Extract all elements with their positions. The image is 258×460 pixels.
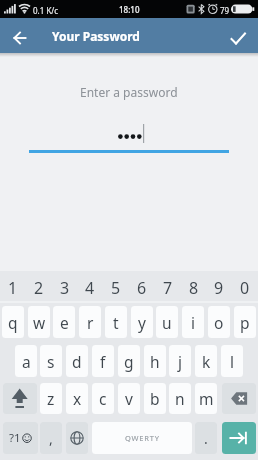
button[interactable]: d [66, 345, 88, 377]
button[interactable]: 9 [206, 274, 232, 302]
button[interactable]: . [195, 422, 217, 454]
staticText: 0 [240, 277, 250, 299]
staticText: 1 [8, 277, 18, 299]
button[interactable]: ?1 [3, 422, 38, 454]
staticText: l [230, 351, 234, 372]
button[interactable]: v [118, 383, 140, 414]
button[interactable]: t [105, 306, 127, 338]
staticText: 7 [163, 277, 173, 299]
button[interactable]: 6 [129, 274, 155, 302]
button[interactable]: QWERTY [92, 422, 192, 454]
button[interactable]: 5 [103, 274, 129, 302]
staticText: e [60, 312, 69, 333]
button[interactable] [222, 383, 256, 414]
staticText: z [47, 388, 55, 409]
button[interactable]: z [40, 383, 62, 414]
button[interactable] [66, 422, 88, 454]
button[interactable]: a [15, 345, 37, 377]
staticText: b [150, 388, 160, 409]
staticText: v [125, 388, 133, 409]
staticText: x [73, 388, 82, 409]
staticText: s [47, 351, 55, 372]
staticText: g [124, 351, 134, 372]
button[interactable]: e [53, 306, 75, 338]
staticText: 0.1 K/c [33, 5, 59, 16]
staticText: , [49, 429, 53, 448]
staticText: 5 [111, 277, 121, 299]
staticText: f [100, 351, 106, 372]
button[interactable] [3, 383, 37, 414]
staticText: j [178, 351, 182, 372]
staticText: t [113, 312, 119, 333]
staticText: QWERTY [125, 433, 160, 443]
staticText: 6 [137, 277, 147, 299]
button[interactable] [6, 24, 34, 52]
staticText: i [191, 312, 195, 333]
button[interactable]: b [144, 383, 166, 414]
staticText: 9 [214, 277, 224, 299]
button[interactable]: n [169, 383, 191, 414]
button[interactable]: s [40, 345, 62, 377]
button[interactable]: f [92, 345, 114, 377]
staticText: ?1 [9, 430, 21, 446]
button[interactable]: 1 [0, 274, 26, 302]
staticText: u [162, 312, 172, 333]
staticText: 4 [85, 277, 95, 299]
staticText: Your Password [52, 28, 140, 44]
button[interactable]: l [221, 345, 243, 377]
staticText: y [138, 312, 146, 333]
button[interactable]: q [2, 306, 24, 338]
staticText: k [202, 351, 211, 372]
button[interactable]: 2 [26, 274, 52, 302]
button[interactable]: i [182, 306, 204, 338]
staticText: m [199, 388, 214, 409]
button[interactable]: y [131, 306, 153, 338]
button[interactable]: g [118, 345, 140, 377]
staticText: p [240, 312, 250, 333]
staticText: Enter a password [80, 84, 178, 100]
staticText: o [214, 312, 224, 333]
staticText: a [22, 351, 31, 372]
staticText: 79 [220, 5, 230, 16]
button[interactable]: j [169, 345, 191, 377]
staticText: w [33, 312, 46, 333]
staticText: . [204, 429, 208, 448]
button[interactable]: c [92, 383, 114, 414]
staticText: r [87, 312, 94, 333]
button[interactable]: , [40, 422, 62, 454]
button[interactable] [224, 22, 252, 50]
button[interactable]: r [79, 306, 101, 338]
button[interactable]: m [195, 383, 217, 414]
button[interactable]: u [156, 306, 178, 338]
button[interactable]: 3 [52, 274, 78, 302]
staticText: n [175, 388, 185, 409]
button[interactable] [222, 422, 256, 454]
button[interactable]: p [234, 306, 256, 338]
button[interactable]: k [195, 345, 217, 377]
staticText: 8 [189, 277, 199, 299]
button[interactable]: x [66, 383, 88, 414]
button[interactable]: 0 [232, 274, 258, 302]
staticText: 2 [34, 277, 44, 299]
button[interactable]: 8 [181, 274, 207, 302]
button[interactable]: 4 [77, 274, 103, 302]
staticText: 18:10 [119, 4, 140, 15]
staticText: 3 [60, 277, 70, 299]
button[interactable]: o [208, 306, 230, 338]
button[interactable]: 7 [155, 274, 181, 302]
staticText: c [99, 388, 107, 409]
staticText: d [72, 351, 82, 372]
button[interactable]: w [28, 306, 50, 338]
staticText: h [150, 351, 160, 372]
button[interactable]: h [144, 345, 166, 377]
staticText: q [8, 312, 18, 333]
